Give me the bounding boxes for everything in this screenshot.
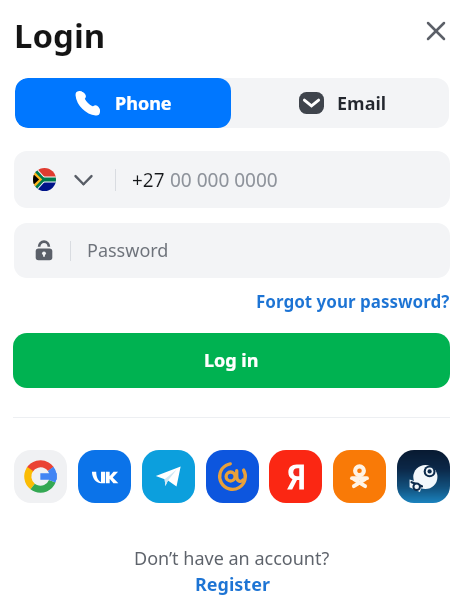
staticText: Password	[87, 238, 169, 263]
button[interactable]: Password	[14, 223, 450, 278]
button[interactable]: Sign in with Google	[14, 450, 67, 503]
staticText: Phone	[115, 91, 172, 116]
staticText: Log in	[204, 348, 259, 373]
button[interactable]: Forgot your password?	[252, 287, 454, 316]
staticText: Login	[14, 13, 106, 58]
button[interactable]: Sign in with VK	[78, 450, 131, 503]
staticText: +27	[132, 167, 170, 193]
button[interactable]: +27	[14, 151, 450, 208]
button[interactable]: Email	[231, 78, 449, 128]
staticText: Forgot your password?	[256, 290, 450, 313]
staticText: Email	[337, 91, 387, 116]
button[interactable]: Sign in with Yandex	[269, 450, 322, 503]
staticText: Don’t have an account?	[134, 546, 330, 571]
button[interactable]: Phone	[15, 78, 231, 128]
button[interactable]: Sign in with Telegram	[142, 450, 195, 503]
button[interactable]: Close	[418, 13, 454, 49]
button[interactable]: Sign in with Mail.ru	[206, 450, 259, 503]
staticText: 00 000 0000	[170, 167, 278, 193]
button[interactable]: Register	[195, 572, 270, 597]
button[interactable]: Sign in with Odnoklassniki	[333, 450, 386, 503]
button[interactable]: Sign in with Steam	[397, 450, 450, 503]
button[interactable]: Log in	[13, 333, 450, 388]
